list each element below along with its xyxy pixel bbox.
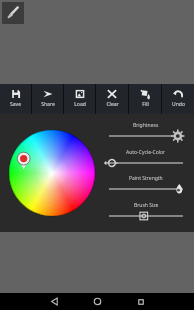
button[interactable]: Brush tool	[2, 2, 24, 24]
button[interactable]: Home	[84, 293, 111, 310]
button[interactable]: Fill	[129, 84, 161, 114]
staticText: Auto-Cycle-Color	[126, 149, 166, 156]
button[interactable]: Load	[64, 84, 95, 114]
button[interactable]: Auto-Cycle-Color	[104, 149, 188, 169]
button[interactable]: Undo	[162, 84, 194, 114]
button[interactable]: Color wheel	[8, 129, 96, 217]
button[interactable]: Brush Size	[104, 202, 188, 222]
staticText: Save	[10, 101, 21, 108]
button[interactable]: Brightness	[104, 122, 188, 142]
staticText: Load	[74, 101, 86, 108]
button[interactable]: Recent apps	[127, 293, 154, 310]
button[interactable]: Save	[0, 84, 31, 114]
button[interactable]: Share	[32, 84, 63, 114]
button[interactable]: Back	[41, 293, 68, 310]
staticText: Fill	[142, 101, 149, 108]
button[interactable]: Clear	[96, 84, 128, 114]
staticText: Brush Size	[134, 202, 159, 209]
staticText: Clear	[106, 101, 119, 108]
button[interactable]: Paint Strength	[104, 175, 188, 195]
staticText: Paint Strength	[129, 175, 163, 182]
staticText: Undo	[172, 101, 185, 108]
staticText: Share	[41, 101, 55, 108]
staticText: Brightness	[133, 122, 159, 129]
